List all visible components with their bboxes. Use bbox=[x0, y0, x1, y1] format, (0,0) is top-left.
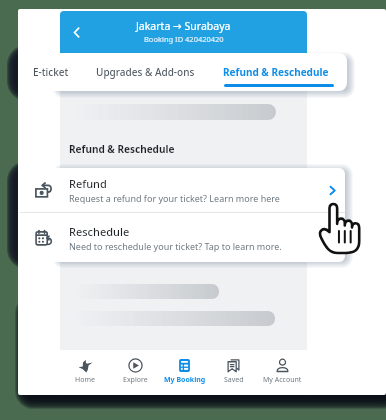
staticText: Refund bbox=[69, 176, 107, 191]
button[interactable]: Saved bbox=[209, 350, 258, 393]
staticText: Jakarta → Surabaya bbox=[136, 19, 231, 33]
button[interactable]: Upgrades & Add-ons bbox=[96, 65, 195, 79]
button[interactable]: My Booking bbox=[160, 350, 209, 393]
staticText: Refund & Reschedule bbox=[69, 142, 175, 156]
staticText: My Account bbox=[263, 375, 302, 385]
button[interactable]: Reschedule bbox=[18, 213, 345, 262]
button[interactable]: E-ticket bbox=[33, 65, 69, 79]
button[interactable]: My Account bbox=[258, 350, 307, 393]
staticText: Saved bbox=[224, 375, 244, 385]
staticText: Home bbox=[75, 375, 95, 385]
button[interactable]: Back bbox=[64, 20, 88, 44]
staticText: Explore bbox=[123, 375, 148, 385]
button[interactable]: Refund bbox=[18, 168, 345, 212]
staticText: Booking ID 420420420 bbox=[144, 34, 224, 44]
staticText: Reschedule bbox=[69, 224, 130, 239]
staticText: My Booking bbox=[164, 375, 206, 385]
button[interactable]: Home bbox=[60, 350, 110, 393]
staticText: Need to reschedule your ticket? Tap to l… bbox=[69, 240, 282, 252]
staticText: Request a refund for your ticket? Learn … bbox=[69, 192, 280, 204]
staticText: Refund & Reschedule bbox=[223, 65, 329, 79]
button[interactable]: Explore bbox=[110, 350, 160, 393]
